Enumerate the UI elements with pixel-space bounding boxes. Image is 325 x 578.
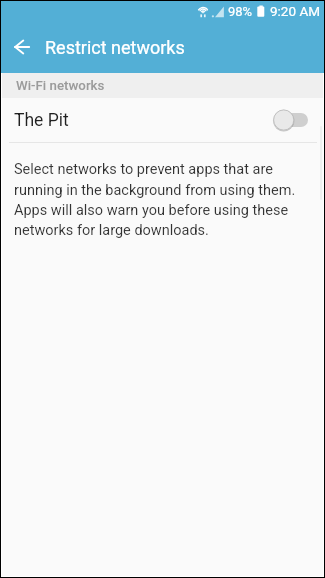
button[interactable]: The Pit: [2, 98, 323, 142]
staticText: 9:20 AM: [270, 3, 320, 19]
staticText: Select networks to prevent apps that are…: [14, 161, 311, 238]
staticText: The Pit: [14, 110, 69, 131]
staticText: 98%: [228, 4, 253, 19]
staticText: Wi-Fi networks: [16, 78, 105, 94]
button[interactable]: Restrict this network: [273, 109, 308, 131]
button[interactable]: Navigate up: [7, 32, 37, 62]
staticText: Restrict networks: [45, 37, 185, 58]
